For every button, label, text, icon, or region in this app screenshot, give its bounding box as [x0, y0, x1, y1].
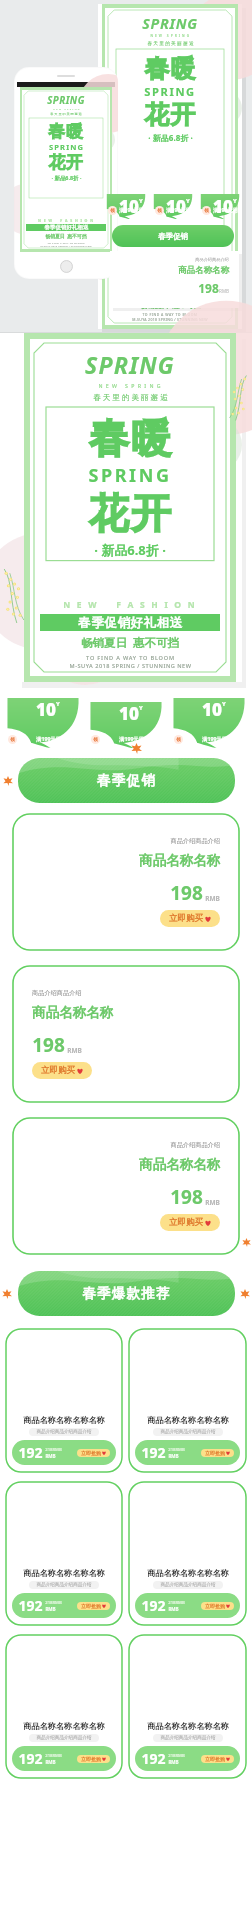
other: decoration: [240, 1289, 250, 1299]
button[interactable]: 商品名称名称名称名称: [5, 1634, 123, 1779]
staticText: SPRING: [88, 463, 172, 488]
staticText: N E W F A S H I O N: [38, 218, 94, 223]
staticText: RMB: [67, 1046, 82, 1055]
other: decoration: [2, 1289, 12, 1299]
staticText: 立即抢购: [81, 1603, 101, 1609]
staticText: 春暖: [88, 413, 172, 463]
staticText: 春暖: [48, 121, 84, 142]
staticText: 立即抢购: [205, 1450, 225, 1456]
staticText: 立即抢购: [205, 1756, 225, 1762]
staticText: 10: [119, 195, 139, 218]
button[interactable]: 领取优惠券: [106, 193, 146, 219]
staticText: 满199元用: [119, 206, 144, 213]
staticText: SPRING: [85, 349, 175, 380]
staticText: SPRING: [144, 84, 196, 99]
button[interactable]: 立即购买: [160, 910, 220, 927]
button[interactable]: 立即抢购: [201, 1602, 234, 1610]
staticText: 商品介绍商品介绍: [32, 989, 82, 997]
staticText: N E W S P R I N G: [53, 108, 80, 111]
staticText: 春季爆款推荐: [82, 1285, 171, 1302]
staticText: N E W F A S H I O N: [63, 599, 197, 611]
button[interactable]: 立即抢购: [77, 1755, 110, 1763]
staticText: RMB: [168, 1759, 179, 1765]
staticText: 立即购买: [169, 1217, 203, 1228]
staticText: 领: [204, 208, 209, 214]
staticText: 198: [170, 880, 203, 906]
staticText: 春暖: [144, 53, 197, 84]
button[interactable]: 商品名称名称名称名称: [5, 1481, 123, 1626]
staticText: 立即抢购: [205, 1603, 225, 1609]
staticText: 满199元用: [119, 735, 144, 742]
staticText: M-SUYA 2018 SPRING / STUNNING NEW: [132, 317, 208, 322]
staticText: 花开: [48, 152, 84, 173]
staticText: 192: [18, 1749, 43, 1768]
button[interactable]: 商品名称名称名称名称: [128, 1481, 247, 1626]
staticText: 198: [170, 1184, 203, 1210]
staticText: 畅销夏日 惠不可挡: [45, 233, 87, 240]
staticText: 领: [10, 737, 15, 743]
button[interactable]: 立即抢购: [77, 1602, 110, 1610]
other: decoration: [242, 1238, 251, 1247]
button[interactable]: 领取优惠券: [153, 193, 193, 219]
staticText: RMB: [168, 1453, 179, 1459]
staticText: SPRING: [49, 142, 84, 152]
staticText: 198: [32, 1032, 65, 1058]
button[interactable]: 立即抢购: [201, 1755, 234, 1763]
button[interactable]: 春季爆款推荐: [0, 1271, 252, 1316]
staticText: Y: [56, 700, 60, 708]
staticText: · 新品6.8折 ·: [148, 132, 193, 143]
staticText: 192: [18, 1596, 43, 1615]
button[interactable]: 立即抢购: [201, 1449, 234, 1457]
button[interactable]: 领取优惠券: [172, 696, 246, 748]
staticText: TO FIND A WAY TO BLOOM: [142, 312, 198, 317]
staticText: 花开: [88, 488, 172, 538]
staticText: SPRING: [142, 14, 198, 33]
button[interactable]: 商品名称名称名称名称: [128, 1328, 247, 1473]
staticText: 商品名称名称: [178, 265, 229, 276]
staticText: 218RMB: [168, 1447, 185, 1453]
staticText: RMB: [45, 1453, 56, 1459]
staticText: 畅销夏日 惠不可挡: [140, 300, 201, 310]
staticText: 192: [141, 1443, 166, 1462]
staticText: N E W S P R I N G: [150, 34, 190, 38]
staticText: 领: [93, 737, 98, 743]
button[interactable]: 商品介绍商品介绍: [12, 1117, 240, 1255]
button[interactable]: 领取优惠券: [6, 696, 80, 748]
staticText: 10: [202, 698, 222, 721]
staticText: RMB: [219, 288, 229, 294]
staticText: 领: [157, 208, 162, 214]
staticText: TO FIND A WAY TO BLOOM: [47, 241, 85, 244]
other: decoration: [131, 743, 142, 754]
staticText: 满199元用: [202, 735, 227, 742]
button[interactable]: 商品介绍商品介绍: [12, 813, 240, 951]
button[interactable]: 商品名称名称名称名称: [5, 1328, 123, 1473]
button[interactable]: 领取优惠券: [200, 193, 240, 219]
button[interactable]: 春季促销: [0, 758, 252, 803]
staticText: RMB: [205, 1198, 220, 1207]
button[interactable]: 商品介绍商品介绍: [12, 965, 240, 1103]
staticText: 领: [176, 737, 181, 743]
staticText: 218RMB: [45, 1447, 62, 1453]
staticText: Y: [186, 197, 190, 205]
staticText: 192: [141, 1596, 166, 1615]
staticText: 商品介绍商品介绍商品介绍: [36, 1582, 92, 1588]
staticText: N E W S P R I N G: [98, 382, 162, 389]
staticText: 满199元用: [166, 206, 191, 213]
staticText: 春 天 里 的 美 丽 邂 逅: [50, 112, 82, 116]
staticText: 立即抢购: [81, 1756, 101, 1762]
button[interactable]: 领取优惠券: [89, 700, 163, 748]
staticText: · 新品6.8折 ·: [51, 174, 82, 181]
staticText: 商品名称名称名称名称: [147, 1568, 229, 1578]
staticText: 立即购买: [41, 1065, 75, 1076]
staticText: 198: [198, 280, 219, 296]
staticText: TO FIND A WAY TO BLOOM: [86, 654, 175, 662]
button[interactable]: 立即购买: [160, 1214, 220, 1231]
staticText: 春季促销: [97, 772, 156, 789]
staticText: 商品名称名称名称名称: [23, 1568, 105, 1578]
button[interactable]: 立即购买: [32, 1062, 92, 1079]
button[interactable]: 商品名称名称名称名称: [128, 1634, 247, 1779]
staticText: 商品介绍商品介绍: [170, 837, 220, 845]
staticText: 192: [18, 1443, 43, 1462]
staticText: Y: [139, 704, 143, 712]
button[interactable]: 立即抢购: [77, 1449, 110, 1457]
